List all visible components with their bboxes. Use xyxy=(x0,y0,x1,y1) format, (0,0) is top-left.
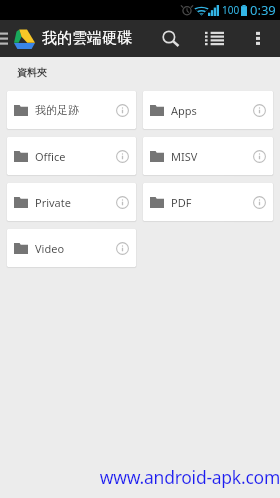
button[interactable]: Apps xyxy=(143,91,273,129)
button[interactable]: Office xyxy=(7,137,136,175)
button[interactable]: Private xyxy=(7,183,136,221)
staticText: 100 xyxy=(222,3,240,17)
button[interactable]: 我的足跡 xyxy=(7,91,136,129)
staticText: 我的足跡 xyxy=(35,103,79,117)
staticText: 0:39 xyxy=(250,1,276,19)
staticText: MISV xyxy=(171,149,198,164)
staticText: www.android-apk.com xyxy=(0,465,280,489)
staticText: Private xyxy=(35,195,71,210)
button[interactable]: MISV xyxy=(143,137,273,175)
staticText: 我的雲端硬碟 xyxy=(42,29,132,48)
button[interactable]: More options xyxy=(236,20,280,57)
button[interactable]: List view xyxy=(193,20,236,57)
button[interactable]: PDF xyxy=(143,183,273,221)
staticText: PDF xyxy=(171,195,192,210)
button[interactable]: Search xyxy=(150,20,193,57)
button[interactable]: Open navigation drawer xyxy=(0,20,9,57)
button[interactable]: Video xyxy=(7,229,136,267)
staticText: Video xyxy=(35,241,65,256)
staticText: Office xyxy=(35,149,66,164)
staticText: Apps xyxy=(171,103,197,118)
staticText: 資料夾 xyxy=(17,66,47,79)
